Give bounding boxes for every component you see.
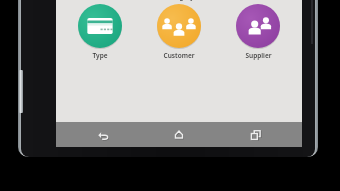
button[interactable]: Customer [144,4,214,60]
staticText: Customer [163,51,195,60]
button[interactable]: Category [144,0,214,1]
button[interactable]: Back [73,122,133,147]
button[interactable]: Recent apps [226,122,286,147]
button[interactable]: Home [149,122,209,147]
staticText: Supplier [245,51,272,60]
other: Power button [19,70,23,113]
staticText: Category [165,0,194,1]
staticText: Type [92,51,108,60]
button[interactable]: Type [65,4,135,60]
button[interactable]: Supplier [223,4,293,60]
